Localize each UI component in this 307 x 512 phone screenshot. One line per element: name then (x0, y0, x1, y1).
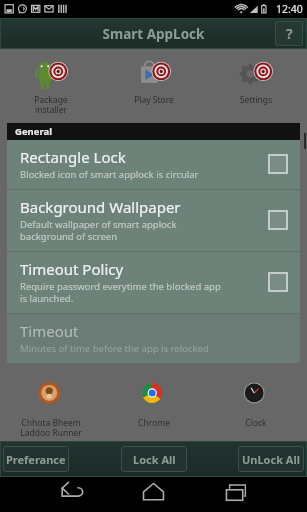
staticText: 12:40 (276, 2, 303, 16)
button[interactable]: Background Wallpaper (7, 190, 300, 251)
staticText: Timeout Policy (20, 259, 124, 279)
staticText: Timeout (20, 321, 79, 341)
staticText: Default wallpaper of smart applock backg… (20, 218, 177, 243)
staticText: Package installer (1, 94, 101, 116)
staticText: General (15, 125, 52, 138)
staticText: Chhota Bheem Laddoo Runner (1, 417, 101, 439)
staticText: Preferance (6, 452, 66, 467)
button[interactable]: UnLock All (238, 446, 304, 472)
button[interactable]: Recents (205, 477, 307, 512)
staticText: UnLock All (242, 452, 301, 467)
button[interactable]: Preferance (3, 446, 69, 472)
staticText: Clock (206, 417, 306, 429)
staticText: Rectangle Lock (20, 147, 126, 167)
staticText: Require password everytime the blocked a… (20, 280, 221, 305)
staticText: Play Store (104, 94, 204, 106)
staticText: Smart AppLock (0, 25, 307, 43)
staticText: ? (286, 24, 293, 43)
button[interactable]: Package installer (1, 53, 101, 116)
staticText: Minutes of time before the app is relock… (20, 342, 209, 355)
staticText: Chrome (104, 417, 204, 429)
button[interactable]: Lock All (121, 446, 187, 472)
button[interactable]: Rectangle Lock (7, 140, 300, 189)
staticText: Blocked icon of smart applock is circula… (20, 168, 199, 181)
button[interactable]: Clock (206, 376, 306, 429)
button[interactable]: Back (0, 477, 103, 512)
button[interactable]: Timeout (7, 314, 300, 363)
button[interactable]: Chrome (104, 376, 204, 429)
staticText: Background Wallpaper (20, 197, 181, 217)
button[interactable]: Help (275, 21, 303, 46)
staticText: Settings (206, 94, 306, 106)
button[interactable]: Chhota Bheem Laddoo Runner (1, 376, 101, 439)
button[interactable]: Play Store (104, 53, 204, 106)
button[interactable]: Home (103, 477, 205, 512)
button[interactable]: Timeout Policy (7, 252, 300, 313)
button[interactable]: Settings (206, 53, 306, 106)
staticText: Lock All (133, 452, 176, 467)
